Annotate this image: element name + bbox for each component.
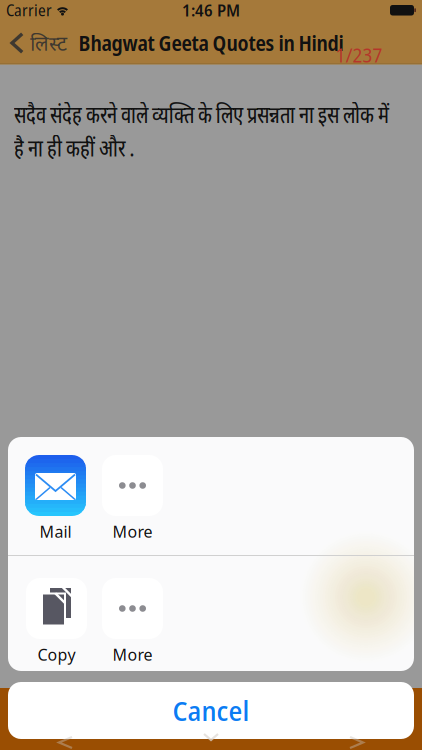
staticText: Cancel	[172, 692, 249, 729]
staticText: 1/237	[335, 42, 382, 68]
staticText: लिस्ट	[30, 30, 67, 56]
staticText: Copy	[37, 644, 75, 665]
staticText: सदैव संदेह करने वाले व्यक्ति के लिए प्रस…	[14, 102, 389, 166]
button[interactable]: More	[102, 578, 163, 665]
staticText: Carrier	[6, 0, 52, 21]
staticText: 1:46 PM	[182, 0, 240, 21]
button[interactable]: Copy	[26, 578, 87, 665]
button[interactable]: Mail	[25, 455, 86, 542]
staticText: Mail	[39, 521, 71, 542]
button[interactable]: More	[102, 455, 163, 542]
staticText: More	[112, 521, 152, 542]
staticText: Bhagwat Geeta Quotes in Hindi	[78, 29, 343, 57]
button[interactable]: लिस्ट	[0, 30, 67, 56]
button[interactable]: Cancel	[8, 682, 414, 739]
staticText: More	[112, 644, 152, 665]
